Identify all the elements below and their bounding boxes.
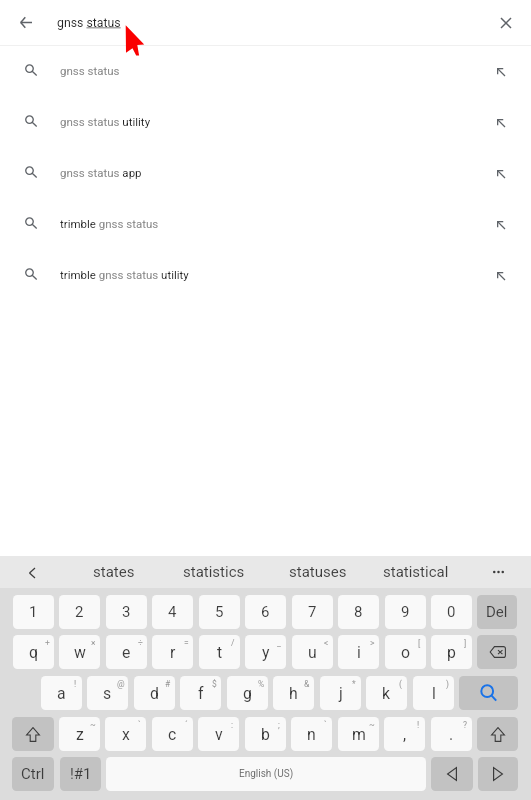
staticText: a	[57, 684, 66, 703]
button[interactable]	[477, 717, 518, 751]
button[interactable]: k	[366, 676, 407, 710]
button[interactable]: Back	[8, 5, 43, 40]
button[interactable]: gnss status utility	[0, 97, 531, 148]
staticText: *	[352, 679, 356, 689]
button[interactable]: 0	[431, 595, 472, 629]
button[interactable]: o	[385, 635, 426, 669]
staticText: ,	[403, 725, 407, 744]
button[interactable]: x	[105, 717, 146, 751]
button[interactable]: More suggestions	[482, 556, 515, 588]
button[interactable]: Ctrl	[12, 757, 54, 791]
button[interactable]: f	[180, 676, 221, 710]
button[interactable]	[12, 717, 54, 751]
button[interactable]: Clear search	[488, 5, 523, 40]
button[interactable]: u	[292, 635, 333, 669]
button[interactable]: b	[245, 717, 286, 751]
button[interactable]: 7	[292, 595, 333, 629]
staticText: gnss status app	[60, 166, 142, 179]
staticText: ~	[369, 720, 375, 730]
button[interactable]: c	[152, 717, 193, 751]
staticText: (	[399, 679, 402, 689]
button[interactable]: p	[431, 635, 472, 669]
button[interactable]: Use this suggestion	[484, 148, 517, 199]
staticText: `	[138, 720, 141, 730]
button[interactable]: Del	[477, 595, 517, 629]
button[interactable]: q	[13, 635, 54, 669]
staticText: t	[217, 643, 223, 662]
button[interactable]: !#1	[60, 757, 101, 791]
staticText: y	[262, 643, 270, 662]
staticText: z	[76, 725, 84, 744]
button[interactable]: i	[338, 635, 379, 669]
staticText: .	[449, 725, 454, 744]
button[interactable]: Use this suggestion	[484, 46, 517, 97]
button[interactable]: r	[152, 635, 193, 669]
button[interactable]: h	[273, 676, 314, 710]
button[interactable]: g	[227, 676, 268, 710]
button[interactable]: gnss status app	[0, 148, 531, 199]
staticText: m	[352, 725, 366, 744]
button[interactable]: e	[106, 635, 147, 669]
staticText: g	[243, 684, 252, 703]
staticText: /	[231, 638, 235, 648]
staticText: English (US)	[239, 768, 294, 780]
button[interactable]: states	[64, 556, 164, 588]
button[interactable]: trimble gnss status utility	[0, 250, 531, 301]
button[interactable]: l	[413, 676, 454, 710]
button[interactable]: j	[320, 676, 361, 710]
staticText: gnss status	[60, 64, 120, 77]
button[interactable]: d	[134, 676, 175, 710]
button[interactable]: statistical	[366, 556, 466, 588]
button[interactable]: 1	[13, 595, 54, 629]
button[interactable]: 9	[385, 595, 426, 629]
button[interactable]: Use this suggestion	[484, 199, 517, 250]
staticText: 0	[447, 603, 456, 621]
button[interactable]: 8	[338, 595, 379, 629]
staticText: v	[215, 725, 223, 744]
button[interactable]: .	[431, 717, 472, 751]
button[interactable]: trimble gnss status	[0, 199, 531, 250]
button[interactable]: w	[59, 635, 100, 669]
button[interactable]: statistics	[164, 556, 264, 588]
staticText: q	[29, 643, 38, 662]
staticText: _	[277, 638, 281, 648]
button[interactable]: m	[338, 717, 379, 751]
button[interactable]: Previous suggestions	[16, 556, 48, 588]
staticText: h	[289, 684, 298, 703]
staticText: [	[418, 638, 421, 648]
button[interactable]	[459, 676, 518, 710]
button[interactable]: 2	[59, 595, 100, 629]
button[interactable]: n	[291, 717, 332, 751]
staticText: w	[74, 643, 86, 662]
button[interactable]: 5	[199, 595, 240, 629]
staticText: @	[117, 679, 125, 689]
staticText: 2	[75, 603, 84, 621]
button[interactable]: statuses	[268, 556, 368, 588]
button[interactable]	[478, 757, 518, 791]
staticText: k	[382, 684, 391, 703]
button[interactable]: English (US)	[106, 757, 426, 791]
button[interactable]: 6	[245, 595, 286, 629]
button[interactable]: t	[199, 635, 240, 669]
staticText: ;	[278, 720, 280, 730]
staticText: statistics	[183, 563, 245, 581]
button[interactable]: v	[198, 717, 239, 751]
staticText: <	[324, 638, 329, 648]
button[interactable]: Use this suggestion	[484, 97, 517, 148]
button[interactable]: s	[87, 676, 128, 710]
button[interactable]: y	[245, 635, 286, 669]
button[interactable]: ,	[384, 717, 425, 751]
staticText: gnss status	[57, 16, 121, 30]
staticText: `	[324, 720, 327, 730]
staticText: n	[307, 725, 316, 744]
button[interactable]: a	[41, 676, 82, 710]
button[interactable]: 4	[152, 595, 193, 629]
button[interactable]: Use this suggestion	[484, 250, 517, 301]
button[interactable]	[477, 635, 517, 669]
button[interactable]: 3	[106, 595, 147, 629]
button[interactable]	[431, 757, 473, 791]
staticText: p	[447, 643, 456, 662]
staticText: 8	[354, 603, 363, 621]
button[interactable]: gnss status	[0, 46, 531, 97]
button[interactable]: z	[59, 717, 100, 751]
